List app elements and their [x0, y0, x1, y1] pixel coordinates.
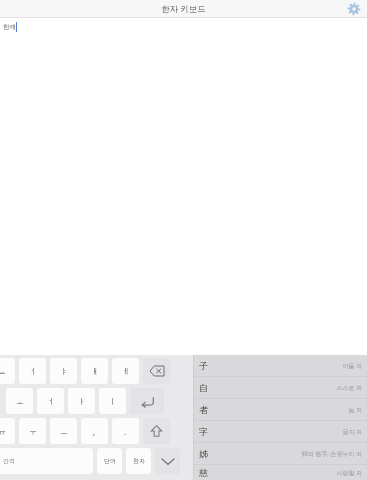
staticText: 字	[199, 426, 208, 437]
staticText: 사랑할 자	[336, 469, 362, 477]
button[interactable]: 단어	[97, 448, 122, 474]
staticText: 놈 자	[348, 406, 362, 414]
staticText: ,	[93, 426, 96, 437]
button[interactable]: ㅜ	[19, 418, 46, 444]
button[interactable]: .	[112, 418, 139, 444]
button[interactable]: 者	[194, 399, 367, 420]
button[interactable]: 姊	[194, 443, 367, 464]
button[interactable]: ㅣ	[99, 388, 126, 414]
staticText: 慈	[199, 467, 208, 478]
staticText: ㅓ	[29, 366, 37, 376]
staticText: 글자 자	[342, 428, 362, 436]
staticText: 간격	[3, 457, 15, 465]
staticText: ㅜ	[29, 426, 37, 436]
staticText: ㅗ	[16, 396, 24, 406]
staticText: ㅛ	[0, 366, 6, 376]
staticText: ㅏ	[78, 396, 86, 406]
button[interactable]: Settings	[347, 2, 361, 16]
staticText: ㅐ	[91, 366, 99, 376]
button[interactable]: ㅓ	[19, 358, 46, 384]
staticText: ㅓ	[47, 396, 55, 406]
button[interactable]: ,	[81, 418, 108, 444]
staticText: 姊	[199, 448, 208, 459]
staticText: ㅔ	[122, 366, 130, 376]
button[interactable]: ㅡ	[50, 418, 77, 444]
button[interactable]: 自	[194, 377, 367, 398]
button[interactable]: 한자	[126, 448, 151, 474]
button[interactable]: ㅛ	[0, 358, 15, 384]
staticText: 姉의 俗字, 손윗누이 자	[301, 450, 362, 458]
button[interactable]: Shift	[143, 418, 170, 444]
button[interactable]: ㅑ	[50, 358, 77, 384]
button[interactable]: 子	[194, 355, 367, 376]
button[interactable]: Enter	[130, 388, 164, 414]
staticText: ㅠ	[0, 426, 6, 436]
staticText: .	[124, 426, 127, 437]
button[interactable]: 慈	[194, 465, 367, 480]
staticText: 自	[199, 382, 208, 393]
staticText: 스스로 자	[336, 384, 362, 392]
staticText: 단어	[104, 457, 116, 465]
staticText: 子	[199, 360, 208, 371]
staticText: ㅑ	[60, 366, 68, 376]
staticText: 한자 키보드	[161, 3, 206, 15]
staticText: 한재	[3, 23, 16, 31]
staticText: ㅣ	[109, 396, 117, 406]
staticText: 者	[199, 404, 208, 415]
button[interactable]: Backspace	[143, 358, 170, 384]
button[interactable]: ㅏ	[68, 388, 95, 414]
button[interactable]: ㅔ	[112, 358, 139, 384]
staticText: 아들 자	[342, 362, 362, 370]
button[interactable]: ㅠ	[0, 418, 15, 444]
button[interactable]: ㅓ	[37, 388, 64, 414]
button[interactable]: 字	[194, 421, 367, 442]
button[interactable]: Hide keyboard	[155, 448, 180, 474]
staticText: 한자	[133, 457, 145, 465]
button[interactable]: ㅐ	[81, 358, 108, 384]
staticText: ㅡ	[60, 426, 68, 436]
button[interactable]: 간격	[0, 448, 93, 474]
button[interactable]: ㅗ	[6, 388, 33, 414]
